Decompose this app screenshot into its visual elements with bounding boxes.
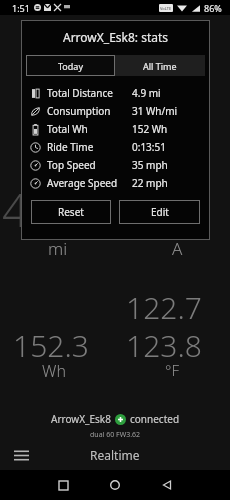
staticText: 22 mph [132,176,168,190]
button[interactable]: Realtime [90,447,140,463]
staticText: Realtime [90,447,140,463]
staticText: Average Speed [47,176,118,190]
staticText: All Time [143,60,177,72]
staticText: 152 Wh [132,122,168,136]
staticText: 122.7 [126,287,202,328]
staticText: mi [48,237,68,260]
button[interactable]: Recents [51,473,75,497]
staticText: 86% [204,2,222,14]
button[interactable]: Reset [31,200,111,224]
staticText: Edit [151,205,169,219]
staticText: 4 [2,178,29,241]
staticText: Ride Time [47,140,94,154]
staticText: ArrowX_Esk8 [51,412,111,426]
button[interactable]: Edit [119,200,200,224]
staticText: Wh [42,360,66,382]
staticText: A [172,237,183,260]
staticText: Total Distance [47,86,113,100]
button[interactable]: Today [26,55,115,76]
button[interactable]: All Time [115,55,205,76]
staticText: ArrowX_Esk8: stats [63,29,169,45]
staticText: connected [130,412,180,426]
staticText: 31 Wh/mi [132,104,178,118]
staticText: Consumption [47,104,111,118]
staticText: Top Speed [47,158,96,172]
staticText: 123.8 [126,325,202,366]
staticText: °F [165,360,179,380]
button[interactable]: Menu [8,442,34,468]
staticText: 4.9 mi [132,86,161,100]
staticText: 152.3 [13,325,89,366]
button[interactable]: Back [155,473,179,497]
staticText: 1:51 [12,2,30,14]
staticText: 0:13:51 [132,140,166,154]
button[interactable]: Home [103,473,127,497]
staticText: 35 mph [132,158,168,172]
staticText: dual 60 FW3.62 [90,430,141,440]
staticText: Today [58,60,83,72]
staticText: VoLTE [160,6,172,11]
staticText: Reset [58,205,84,219]
staticText: Total Wh [47,122,88,136]
